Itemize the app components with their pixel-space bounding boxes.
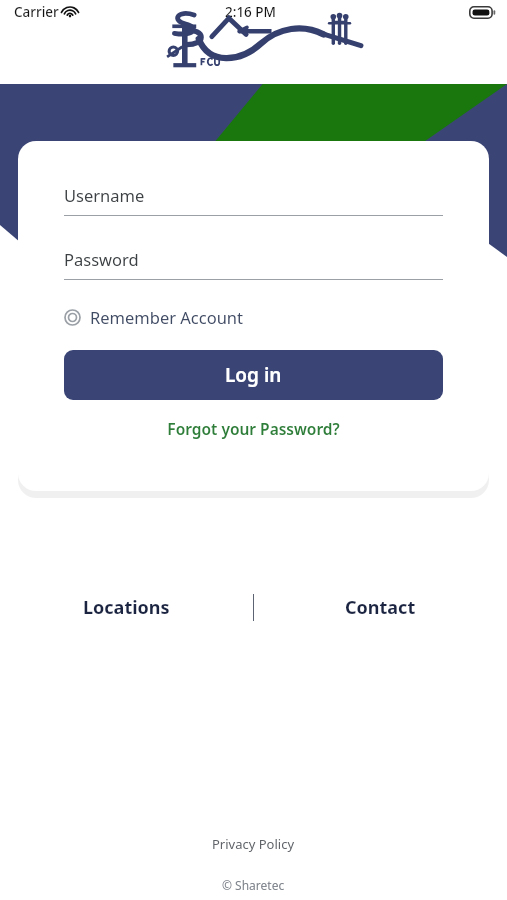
- staticText: Contact: [345, 595, 416, 620]
- staticText: Log in: [225, 362, 282, 388]
- button[interactable]: Contact: [329, 588, 432, 627]
- button[interactable]: Password: [64, 248, 443, 280]
- staticText: 2:16 PM: [225, 3, 276, 21]
- button[interactable]: Username: [64, 184, 443, 216]
- staticText: © Sharetec: [222, 877, 285, 893]
- button[interactable]: Log in: [64, 350, 443, 400]
- staticText: Privacy Policy: [212, 835, 295, 853]
- staticText: Username: [64, 184, 145, 206]
- staticText: Password: [64, 248, 139, 270]
- staticText: Carrier: [14, 3, 59, 21]
- button[interactable]: Remember Account toggle: [64, 304, 244, 330]
- staticText: Forgot your Password?: [167, 418, 340, 439]
- staticText: Remember Account: [90, 306, 244, 328]
- button[interactable]: Locations: [67, 588, 186, 627]
- other: Remember Account toggle: [64, 309, 81, 326]
- staticText: Locations: [83, 595, 170, 620]
- button[interactable]: Forgot your Password?: [64, 414, 443, 443]
- button[interactable]: Privacy Policy: [198, 832, 309, 856]
